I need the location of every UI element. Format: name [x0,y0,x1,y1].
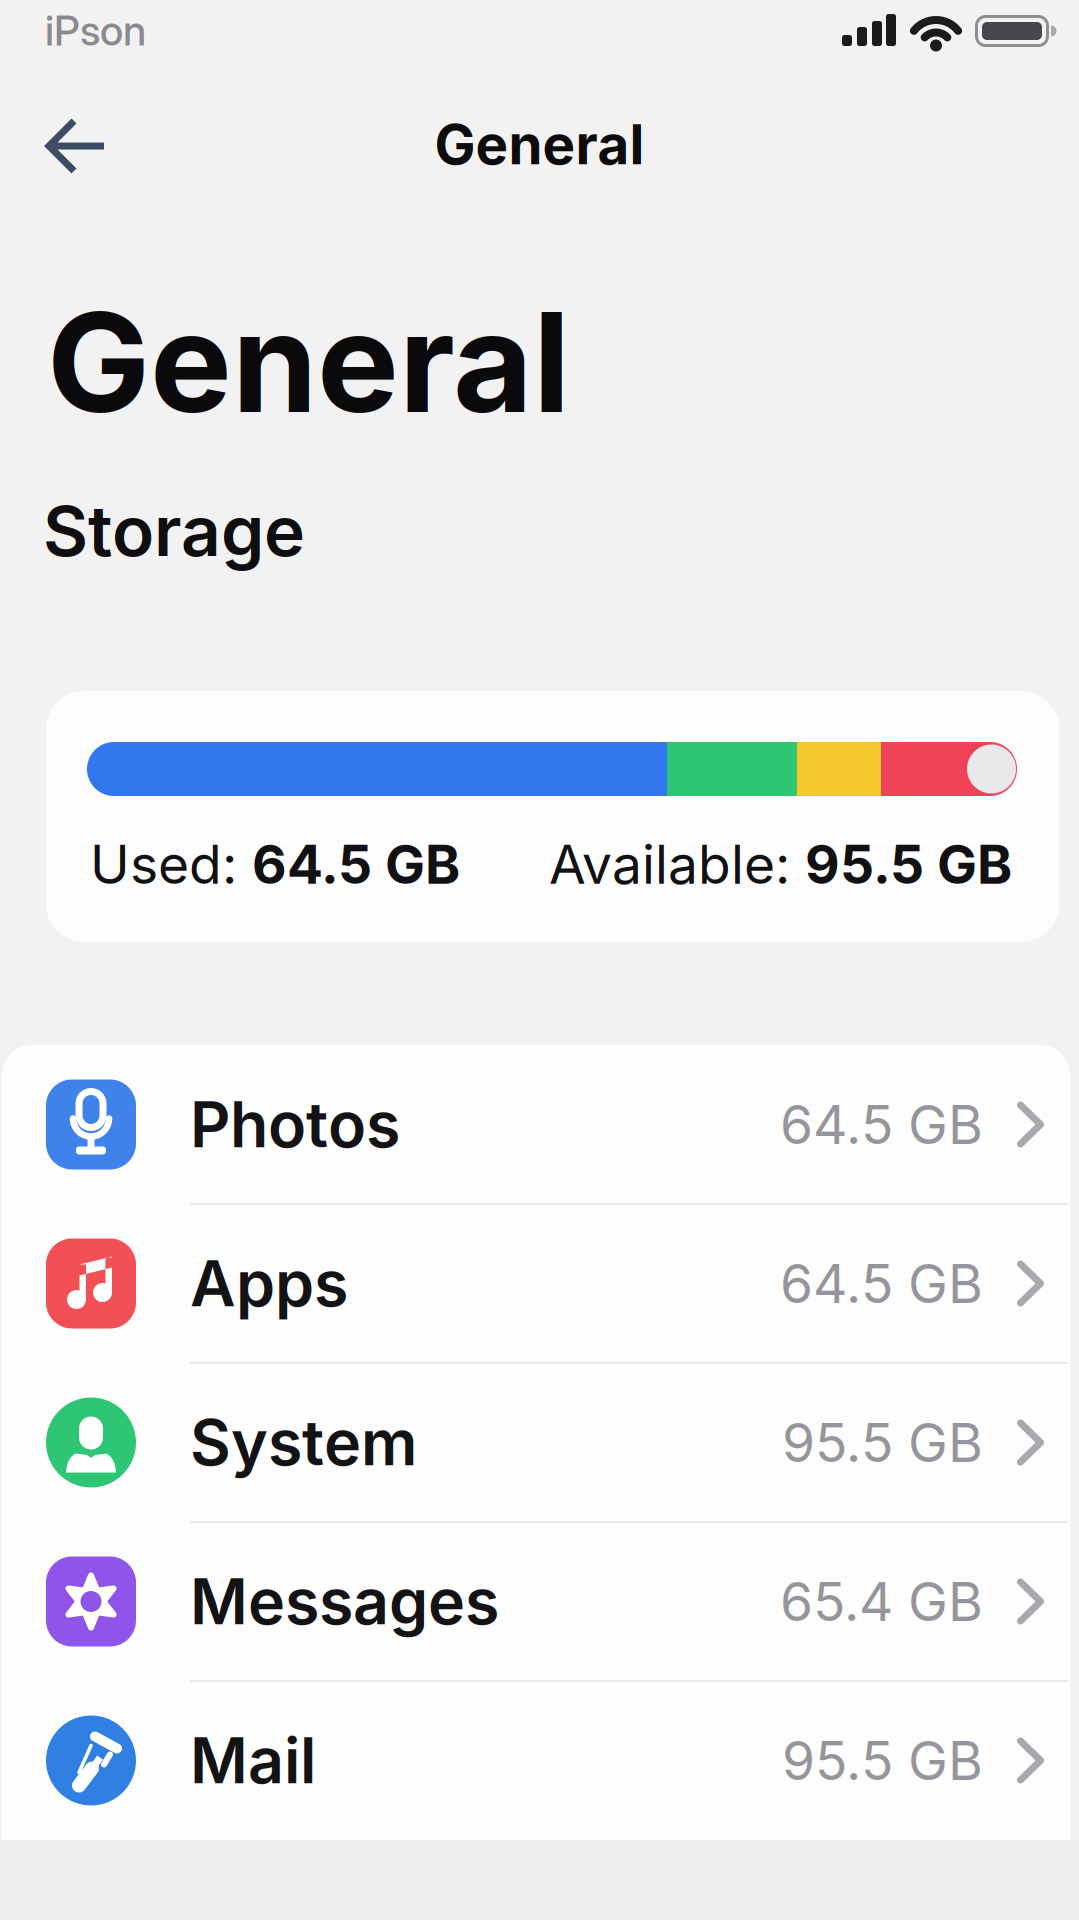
staticText: 95.5 GB [782,1411,983,1474]
staticText: 95.5 GB [782,1729,983,1792]
staticText: 95.5 GB [805,833,1012,896]
staticText: Messages [190,1564,499,1638]
staticText: Available: [549,833,805,896]
button[interactable]: System [2,1363,1070,1522]
staticText: General [47,281,570,443]
staticText: Photos [190,1087,400,1161]
staticText: Used: [90,833,252,896]
staticText: iPson [45,6,146,55]
button[interactable]: Messages [2,1522,1070,1681]
staticText: 64.5 GB [252,833,460,896]
staticText: 65.4 GB [780,1570,983,1633]
staticText: Apps [190,1246,348,1320]
button[interactable]: Apps [2,1204,1070,1363]
staticText: Storage [43,490,305,572]
button[interactable]: Back [38,112,114,180]
staticText: General [434,112,644,176]
staticText: Mail [190,1723,316,1797]
staticText: System [190,1405,417,1479]
button[interactable]: Photos [2,1045,1070,1204]
staticText: 64.5 GB [780,1252,983,1315]
button[interactable]: Mail [2,1681,1070,1840]
staticText: 64.5 GB [780,1093,983,1156]
